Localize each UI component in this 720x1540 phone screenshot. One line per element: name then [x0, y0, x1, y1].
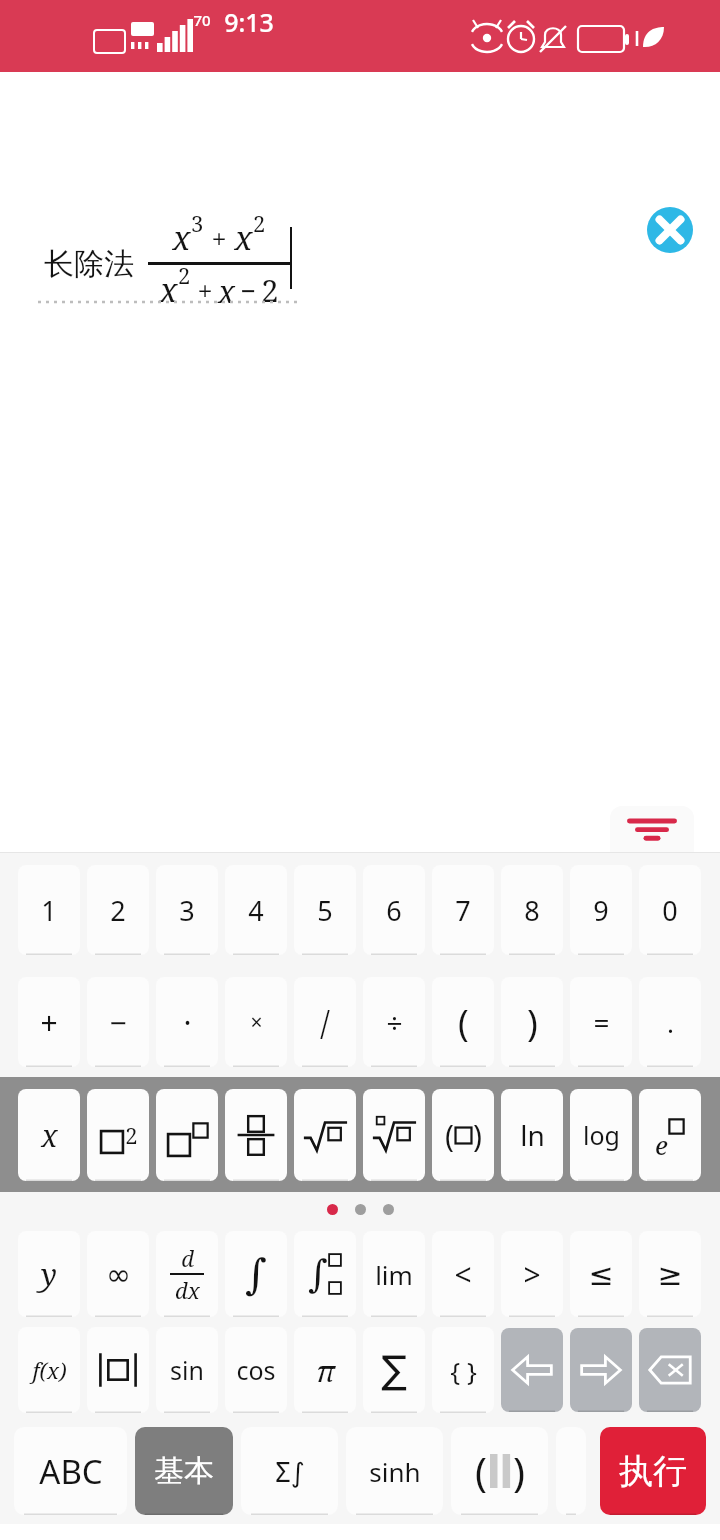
button[interactable]: > — [501, 1231, 563, 1317]
staticText: ABC — [39, 1449, 103, 1494]
staticText: x — [159, 267, 178, 312]
button[interactable]: 2 — [87, 865, 149, 955]
staticText: 8 — [524, 892, 540, 929]
staticText: · — [183, 1002, 192, 1043]
button[interactable]: 9 — [570, 865, 632, 955]
button[interactable]: 执行 — [600, 1427, 706, 1515]
button[interactable]: × — [225, 977, 287, 1067]
button[interactable]: < — [432, 1231, 494, 1317]
button[interactable]: x — [18, 1089, 80, 1181]
staticText: 2 — [178, 260, 191, 290]
staticText: ( — [458, 998, 469, 1047]
staticText: y — [41, 1254, 57, 1295]
button[interactable]: Keyboard options — [610, 806, 694, 852]
staticText: 6 — [386, 892, 402, 929]
staticText: < — [454, 1254, 472, 1295]
button[interactable]: f(x) — [18, 1327, 80, 1413]
staticText: + — [40, 1002, 58, 1043]
staticText: ) — [473, 1115, 482, 1156]
button[interactable] — [87, 1327, 149, 1413]
staticText: ) — [527, 998, 538, 1047]
button[interactable]: 0 — [639, 865, 701, 955]
button[interactable]: ) — [501, 977, 563, 1067]
button[interactable]: 6 — [363, 865, 425, 955]
button[interactable]: 3 — [156, 865, 218, 955]
staticText: 3 — [179, 892, 195, 929]
button[interactable]: − — [87, 977, 149, 1067]
button[interactable]: 1 — [18, 865, 80, 955]
staticText: 5 — [317, 892, 333, 929]
button[interactable]: d — [156, 1231, 218, 1317]
staticText: π — [316, 1351, 335, 1390]
button[interactable]: ∑ — [363, 1327, 425, 1413]
button[interactable]: . — [639, 977, 701, 1067]
staticText: ln — [520, 1116, 545, 1154]
staticText: − — [109, 1002, 127, 1043]
button[interactable]: Move cursor right — [570, 1328, 632, 1412]
button[interactable]: cos — [225, 1327, 287, 1413]
staticText: 9:13 — [224, 5, 274, 39]
button[interactable]: ∫ — [294, 1231, 356, 1317]
button[interactable]: sinh — [346, 1427, 443, 1515]
staticText: × — [250, 1008, 263, 1037]
button[interactable] — [156, 1089, 218, 1181]
button[interactable]: ∞ — [87, 1231, 149, 1317]
button[interactable]: = — [570, 977, 632, 1067]
button[interactable] — [225, 1089, 287, 1181]
button[interactable]: π — [294, 1327, 356, 1413]
button[interactable] — [294, 1089, 356, 1181]
staticText: ≤ — [588, 1257, 614, 1292]
button[interactable]: 8 — [501, 865, 563, 955]
button[interactable]: Move cursor left — [501, 1328, 563, 1412]
button[interactable]: e — [639, 1089, 701, 1181]
button[interactable]: ( — [451, 1427, 548, 1515]
button[interactable]: ÷ — [363, 977, 425, 1067]
staticText: log — [583, 1118, 620, 1152]
staticText: = — [593, 1003, 610, 1041]
button[interactable]: Backspace — [639, 1328, 701, 1412]
staticText: / — [320, 1000, 330, 1045]
button[interactable]: Σ∫ — [241, 1427, 338, 1515]
staticText: ( — [475, 1444, 487, 1498]
staticText: d — [181, 1243, 194, 1273]
staticText: { } — [450, 1353, 477, 1388]
staticText: + — [197, 272, 213, 309]
button[interactable]: 5 — [294, 865, 356, 955]
staticText: x — [234, 215, 253, 260]
button[interactable]: 4 — [225, 865, 287, 955]
button[interactable]: / — [294, 977, 356, 1067]
staticText: 7 — [455, 892, 471, 929]
button[interactable]: ( — [432, 977, 494, 1067]
staticText: ≥ — [657, 1257, 683, 1292]
button[interactable]: 2 — [87, 1089, 149, 1181]
button[interactable]: + — [18, 977, 80, 1067]
button[interactable]: ≥ — [639, 1231, 701, 1317]
button[interactable]: ( — [432, 1089, 494, 1181]
button[interactable] — [363, 1089, 425, 1181]
staticText: 4 — [248, 892, 264, 929]
button[interactable]: { } — [432, 1327, 494, 1413]
staticText: x — [172, 215, 191, 260]
button[interactable]: ≤ — [570, 1231, 632, 1317]
button[interactable]: y — [18, 1231, 80, 1317]
staticText: 2 — [125, 1120, 138, 1150]
button[interactable]: lim — [363, 1231, 425, 1317]
staticText: 9 — [593, 892, 609, 929]
button[interactable]: Clear formula — [645, 205, 695, 255]
button[interactable]: 基本 — [135, 1427, 233, 1515]
staticText: 0 — [662, 892, 678, 929]
button[interactable]: ∫ — [225, 1231, 287, 1317]
button[interactable]: log — [570, 1089, 632, 1181]
staticText: x — [218, 270, 235, 312]
staticText: 3 — [191, 208, 204, 238]
button[interactable]: 7 — [432, 865, 494, 955]
button[interactable]: sin — [156, 1327, 218, 1413]
button[interactable]: · — [156, 977, 218, 1067]
staticText: 执行 — [619, 1450, 687, 1493]
staticText: 2 — [110, 892, 126, 929]
staticText: 基本 — [154, 1452, 214, 1490]
staticText: ) — [513, 1444, 525, 1498]
button[interactable]: ln — [501, 1089, 563, 1181]
button[interactable]: ABC — [14, 1427, 127, 1515]
